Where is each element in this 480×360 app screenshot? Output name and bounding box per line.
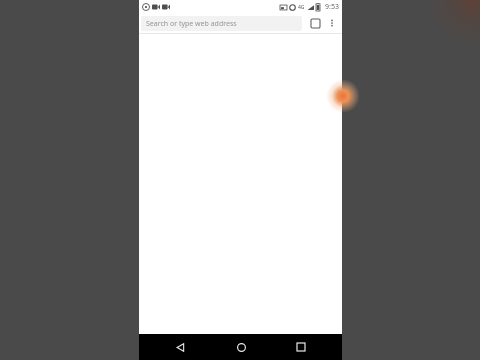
staticText: 9:53 [325,2,339,12]
button[interactable]: More options [324,15,340,31]
button[interactable]: Back [160,334,200,360]
button[interactable]: Search or type web address [141,16,302,31]
staticText: Search or type web address [146,19,237,29]
button[interactable]: Recent apps [281,334,321,360]
button[interactable]: Switch tabs [306,14,324,32]
button[interactable]: Home [221,334,261,360]
staticText: 4G [298,4,305,11]
